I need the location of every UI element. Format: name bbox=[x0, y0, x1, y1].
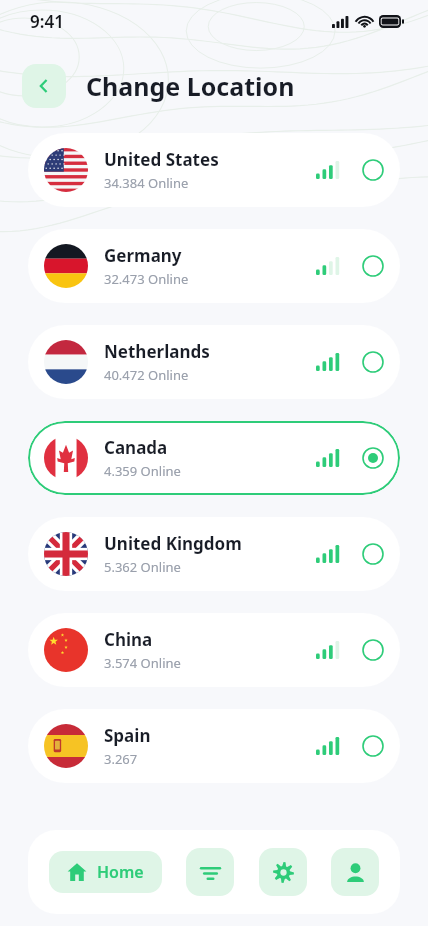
button[interactable]: Netherlands bbox=[28, 325, 400, 399]
button[interactable]: Profile bbox=[331, 848, 379, 896]
button[interactable]: Select bbox=[362, 735, 384, 757]
staticText: 40.472 Online bbox=[104, 366, 189, 384]
button[interactable]: Selected bbox=[362, 447, 384, 469]
staticText: 34.384 Online bbox=[104, 174, 189, 192]
button[interactable]: Select bbox=[362, 639, 384, 661]
button[interactable]: Home bbox=[49, 851, 162, 893]
staticText: United States bbox=[104, 148, 219, 171]
button[interactable]: Select bbox=[362, 543, 384, 565]
staticText: United Kingdom bbox=[104, 532, 242, 555]
staticText: 9:41 bbox=[30, 10, 64, 33]
button[interactable]: Settings bbox=[259, 848, 307, 896]
staticText: China bbox=[104, 628, 153, 651]
button[interactable]: Germany bbox=[28, 229, 400, 303]
button[interactable]: Select bbox=[362, 351, 384, 373]
button[interactable]: Select bbox=[362, 159, 384, 181]
staticText: Spain bbox=[104, 724, 151, 747]
staticText: 5.362 Online bbox=[104, 558, 181, 576]
staticText: 3.267 bbox=[104, 750, 138, 768]
button[interactable]: China bbox=[28, 613, 400, 687]
staticText: Netherlands bbox=[104, 340, 210, 363]
staticText: Home bbox=[97, 861, 144, 883]
button[interactable]: Canada bbox=[28, 421, 400, 495]
staticText: Canada bbox=[104, 436, 168, 459]
staticText: Germany bbox=[104, 244, 182, 267]
button[interactable]: Spain bbox=[28, 709, 400, 783]
staticText: 32.473 Online bbox=[104, 270, 189, 288]
button[interactable]: United Kingdom bbox=[28, 517, 400, 591]
button[interactable]: Select bbox=[362, 255, 384, 277]
button[interactable]: Filter bbox=[186, 848, 234, 896]
staticText: 3.574 Online bbox=[104, 654, 181, 672]
staticText: Change Location bbox=[86, 69, 295, 103]
button[interactable]: United States bbox=[28, 133, 400, 207]
button[interactable]: Back bbox=[22, 64, 66, 108]
staticText: 4.359 Online bbox=[104, 462, 181, 480]
